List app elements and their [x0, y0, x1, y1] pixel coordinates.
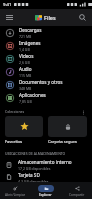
button[interactable]: Documentos y otros — [0, 78, 92, 91]
staticText: Imágenes — [19, 40, 41, 46]
staticText: 9:41 — [3, 2, 12, 8]
button[interactable]: Explorar — [30, 182, 61, 199]
button[interactable] — [48, 116, 87, 137]
staticText: 7,85 GB — [19, 99, 32, 104]
staticText: Tarjeta SD — [18, 172, 40, 178]
staticText: UBICACIONES DE ALMACENAMIENTO — [5, 151, 66, 156]
button[interactable]: Vídeos — [0, 52, 92, 65]
staticText: Carpeta segura — [48, 139, 77, 144]
button[interactable]: Buscar — [77, 12, 88, 23]
button[interactable]: Aplicaciones — [0, 91, 92, 104]
button[interactable]: Abrir/Limpiar — [0, 182, 30, 199]
staticText: Colecciones — [5, 109, 25, 114]
staticText: Abrir/Limpiar — [5, 193, 25, 197]
staticText: Descargas — [19, 27, 42, 33]
staticText: Aplicaciones — [19, 92, 46, 98]
button[interactable]: Tarjeta SD — [0, 172, 92, 182]
button[interactable]: Almacenamiento interno — [0, 158, 92, 172]
staticText: Explorar — [39, 193, 52, 197]
button[interactable]: Imágenes — [0, 39, 92, 52]
button[interactable]: Menú — [4, 12, 15, 23]
button[interactable]: Audio — [0, 65, 92, 78]
staticText: 1,4 GB — [19, 47, 30, 52]
staticText: 348 MB — [19, 86, 32, 91]
staticText: Compartir — [69, 193, 85, 197]
staticText: 721 MB — [19, 34, 32, 39]
staticText: 2,6 GB — [19, 60, 30, 65]
staticText: Documentos y otros — [19, 79, 63, 85]
staticText: 4,3 GB disponibles — [18, 179, 49, 182]
button[interactable]: Compartir — [61, 182, 92, 199]
staticText: Almacenamiento interno — [18, 159, 72, 165]
staticText: Audio — [19, 66, 32, 72]
staticText: Vídeos — [19, 53, 34, 59]
staticText: 17,2 GB disponibles — [18, 166, 51, 171]
staticText: Files — [44, 14, 56, 21]
button[interactable] — [5, 116, 43, 137]
staticText: 115 MB — [19, 73, 32, 78]
button[interactable]: Descargas — [0, 26, 92, 39]
button[interactable]: Más opciones — [79, 108, 87, 116]
staticText: Favoritos — [5, 139, 23, 144]
